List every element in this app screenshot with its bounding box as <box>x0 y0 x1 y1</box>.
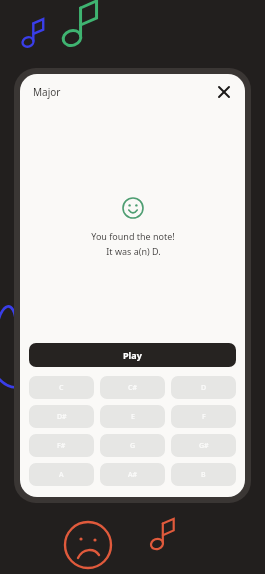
button[interactable]: B <box>171 463 236 486</box>
button[interactable]: Close <box>214 82 234 102</box>
button[interactable]: C# <box>100 376 165 399</box>
staticText: A <box>59 470 64 480</box>
button[interactable]: Play <box>29 343 236 367</box>
button[interactable]: D# <box>29 405 94 428</box>
staticText: E <box>131 412 135 422</box>
staticText: It was a(n) D. <box>106 245 161 257</box>
button[interactable]: E <box>100 405 165 428</box>
staticText: Play <box>123 349 142 361</box>
button[interactable]: C <box>29 376 94 399</box>
staticText: A# <box>128 470 138 480</box>
staticText: D# <box>57 412 67 422</box>
button[interactable]: F# <box>29 434 94 457</box>
button[interactable]: A <box>29 463 94 486</box>
button[interactable]: G# <box>171 434 236 457</box>
staticText: G# <box>199 441 209 451</box>
button[interactable]: D <box>171 376 236 399</box>
staticText: D <box>201 383 207 393</box>
staticText: G <box>130 441 136 451</box>
staticText: Major <box>33 85 61 99</box>
staticText: C <box>59 383 64 393</box>
staticText: F# <box>57 441 66 451</box>
button[interactable]: A# <box>100 463 165 486</box>
staticText: C# <box>128 383 137 393</box>
staticText: You found the note! <box>91 230 175 242</box>
button[interactable]: F <box>171 405 236 428</box>
button[interactable]: G <box>100 434 165 457</box>
staticText: B <box>201 470 206 480</box>
staticText: F <box>202 412 206 422</box>
